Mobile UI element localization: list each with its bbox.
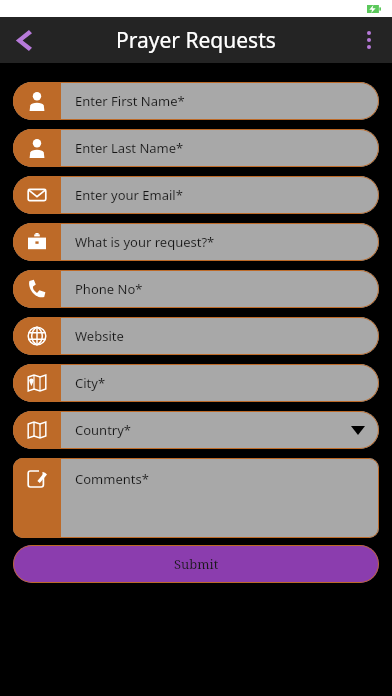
- button[interactable]: Comments*: [13, 458, 379, 538]
- staticText: Enter Last Name*: [75, 139, 184, 157]
- staticText: Submit: [174, 555, 219, 573]
- button[interactable]: Enter Last Name*: [13, 129, 379, 167]
- staticText: Enter First Name*: [75, 92, 185, 110]
- staticText: Country*: [75, 421, 132, 439]
- staticText: City*: [75, 374, 106, 392]
- staticText: Prayer Requests: [116, 26, 276, 55]
- staticText: Enter your Email*: [75, 186, 183, 204]
- button[interactable]: Country*: [13, 411, 379, 449]
- staticText: Website: [75, 327, 124, 345]
- button[interactable]: More options: [346, 17, 392, 63]
- button[interactable]: What is your request?*: [13, 223, 379, 261]
- button[interactable]: Enter your Email*: [13, 176, 379, 214]
- staticText: Comments*: [75, 470, 149, 488]
- button[interactable]: Phone No*: [13, 270, 379, 308]
- button[interactable]: Back: [0, 17, 46, 63]
- button[interactable]: Website: [13, 317, 379, 355]
- button[interactable]: City*: [13, 364, 379, 402]
- button[interactable]: Enter First Name*: [13, 82, 379, 120]
- staticText: Phone No*: [75, 280, 143, 298]
- button[interactable]: Submit: [13, 545, 379, 583]
- staticText: What is your request?*: [75, 233, 215, 251]
